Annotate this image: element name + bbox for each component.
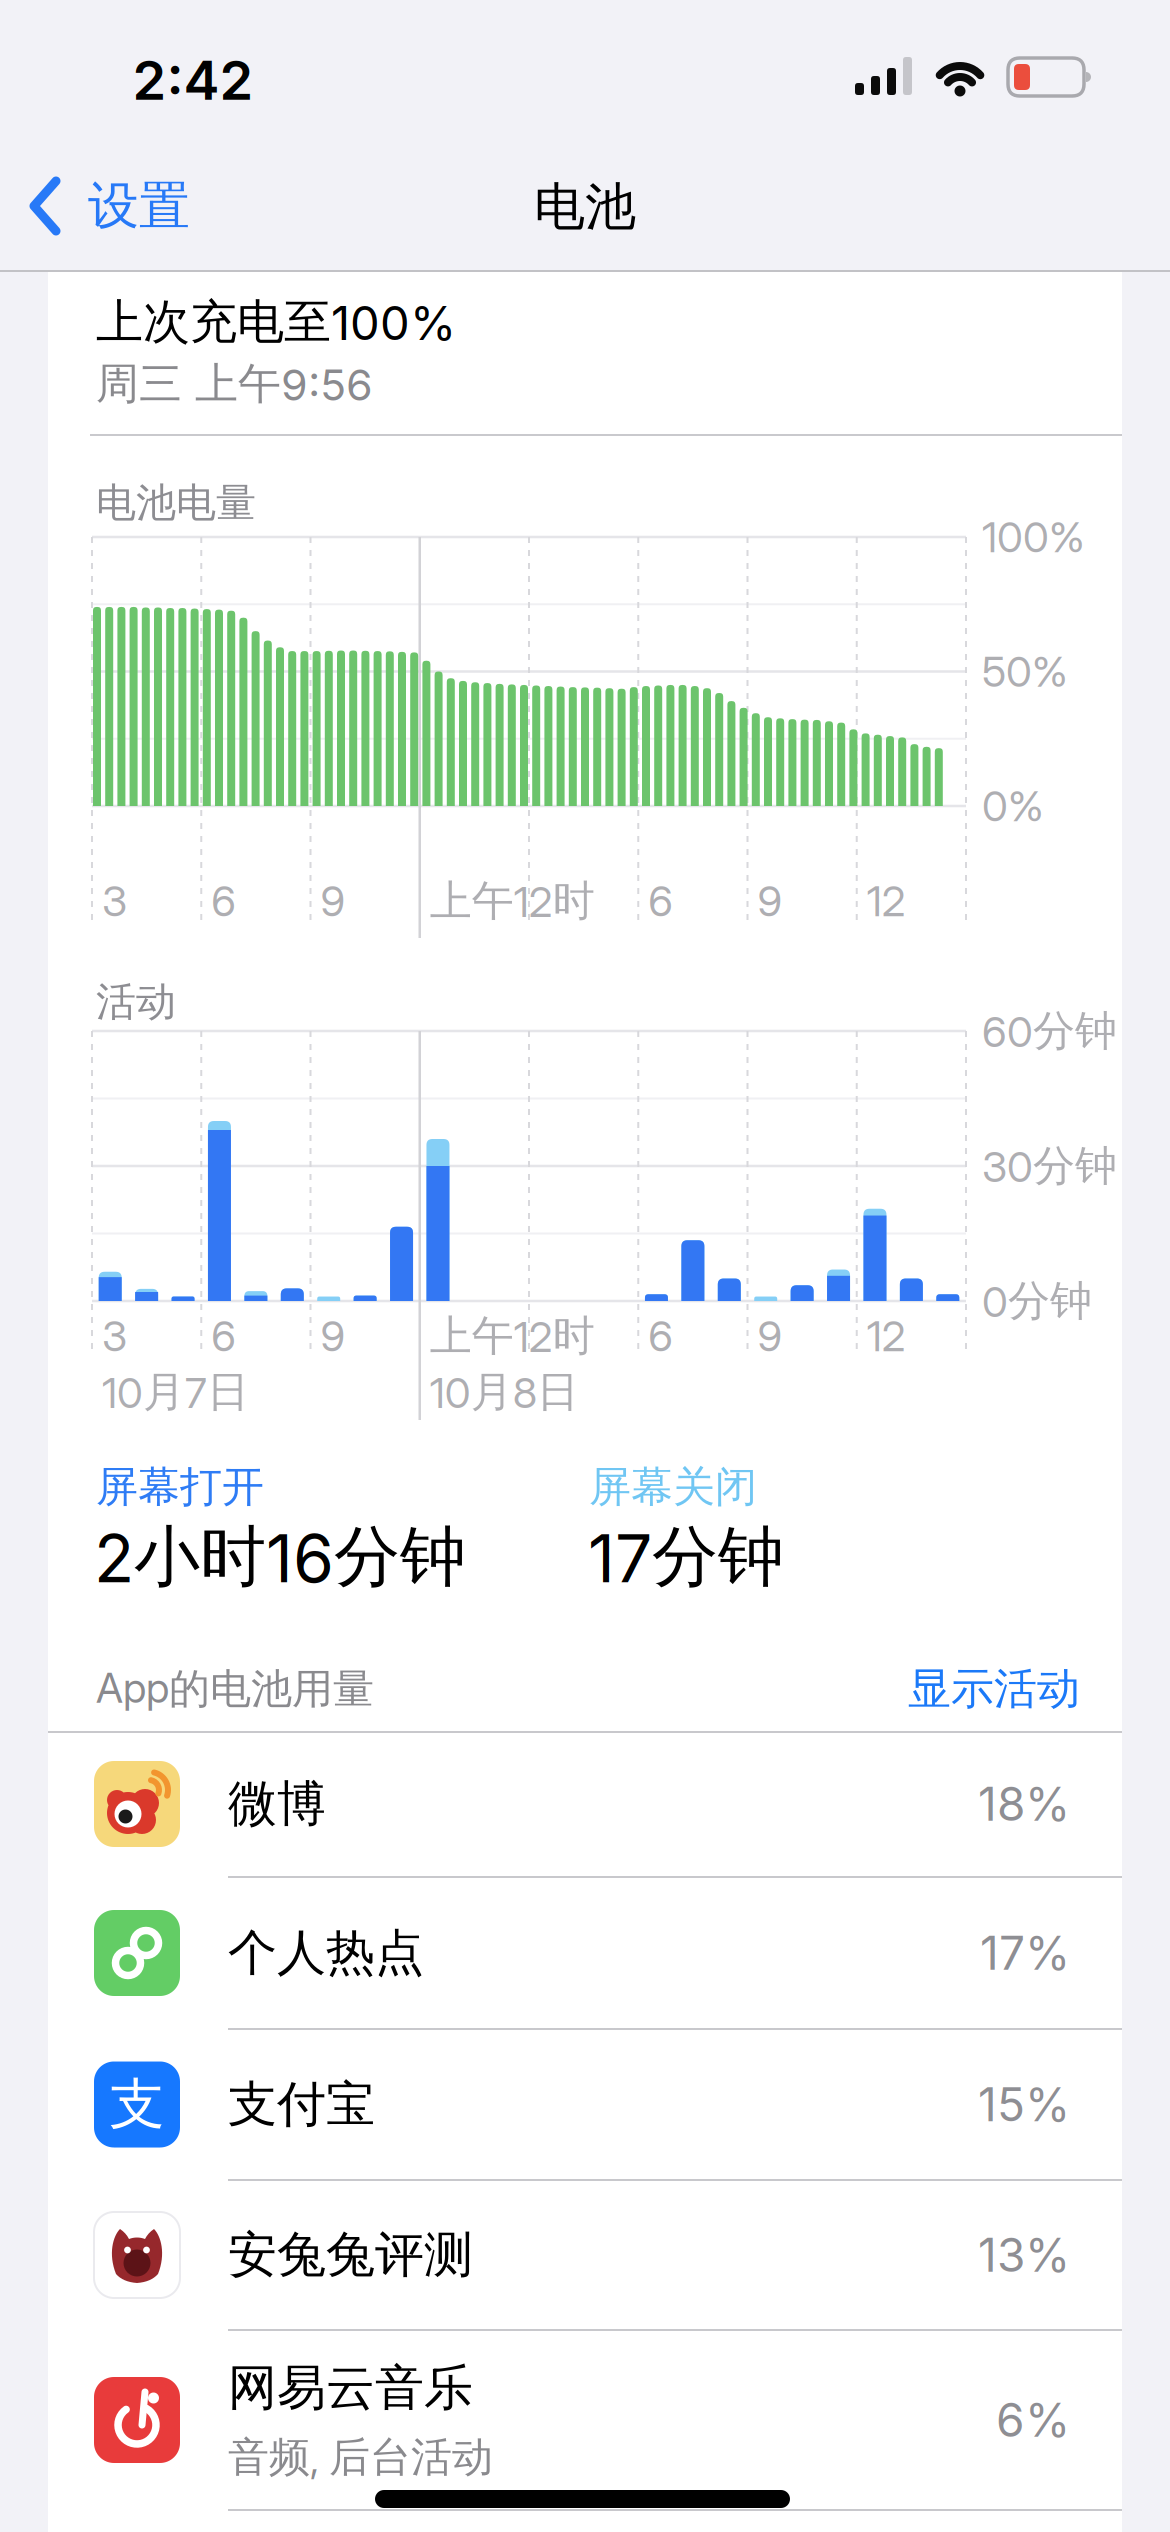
staticText: 上午12时 xyxy=(430,1308,595,1364)
button[interactable]: 个人热点 xyxy=(48,1878,1122,2028)
staticText: 10月8日 xyxy=(430,1364,579,1420)
staticText: 3 xyxy=(102,1309,127,1363)
staticText: 9 xyxy=(320,874,345,928)
staticText: 12 xyxy=(867,1309,906,1363)
staticText: 屏幕打开 xyxy=(96,1459,264,1515)
staticText: 支付宝 xyxy=(228,2072,375,2137)
staticText: 活动 xyxy=(96,975,176,1028)
button[interactable]: 网易云音乐 xyxy=(48,2331,1122,2509)
button[interactable]: 安兔兔评测 xyxy=(48,2181,1122,2329)
staticText: 30分钟 xyxy=(982,1138,1117,1194)
staticText: 6 xyxy=(211,1309,236,1363)
staticText: 周三 上午9:56 xyxy=(96,356,373,412)
staticText: 3 xyxy=(102,874,127,928)
staticText: 0分钟 xyxy=(982,1273,1092,1329)
staticText: 9 xyxy=(757,1309,782,1363)
staticText: 设置 xyxy=(88,172,190,240)
staticText: 0% xyxy=(982,779,1044,833)
button[interactable]: 支 xyxy=(48,2030,1122,2179)
staticText: 50% xyxy=(982,645,1068,698)
staticText: 屏幕关闭 xyxy=(589,1459,757,1515)
staticText: 9 xyxy=(757,874,782,928)
staticText: 音频, 后台活动 xyxy=(228,2430,493,2484)
button[interactable]: 设置 xyxy=(28,161,288,251)
staticText: 上午12时 xyxy=(430,873,595,929)
staticText: 13% xyxy=(978,2226,1070,2284)
staticText: 支 xyxy=(109,2068,164,2141)
button[interactable]: 显示活动 xyxy=(820,1644,1080,1734)
staticText: 电池电量 xyxy=(96,476,256,529)
staticText: 2小时16分钟 xyxy=(94,1513,466,1601)
button[interactable]: 微博 xyxy=(48,1732,1122,1876)
staticText: 上次充电至100% xyxy=(96,291,456,353)
staticText: 15% xyxy=(978,2075,1070,2134)
staticText: 100% xyxy=(982,510,1085,564)
staticText: 个人热点 xyxy=(228,1921,424,1985)
staticText: 网易云音乐 xyxy=(228,2355,473,2420)
staticText: 12 xyxy=(867,874,906,928)
staticText: 2:42 xyxy=(132,46,253,114)
staticText: 9 xyxy=(320,1309,345,1363)
button[interactable]: 屏幕关闭 xyxy=(589,1442,1019,1602)
staticText: 6% xyxy=(996,2391,1070,2449)
staticText: 6 xyxy=(648,1309,673,1363)
staticText: 17% xyxy=(980,1924,1070,1982)
staticText: App的电池用量 xyxy=(96,1662,374,1716)
staticText: 显示活动 xyxy=(908,1661,1080,1717)
staticText: 60分钟 xyxy=(982,1003,1117,1059)
staticText: 17分钟 xyxy=(588,1513,784,1601)
staticText: 微博 xyxy=(228,1772,326,1836)
button[interactable]: 屏幕打开 xyxy=(96,1442,566,1602)
staticText: 安兔兔评测 xyxy=(228,2223,473,2287)
staticText: 18% xyxy=(978,1775,1070,1833)
staticText: 电池 xyxy=(534,173,636,241)
staticText: 6 xyxy=(648,874,673,928)
staticText: 6 xyxy=(211,874,236,928)
staticText: 10月7日 xyxy=(102,1364,249,1420)
